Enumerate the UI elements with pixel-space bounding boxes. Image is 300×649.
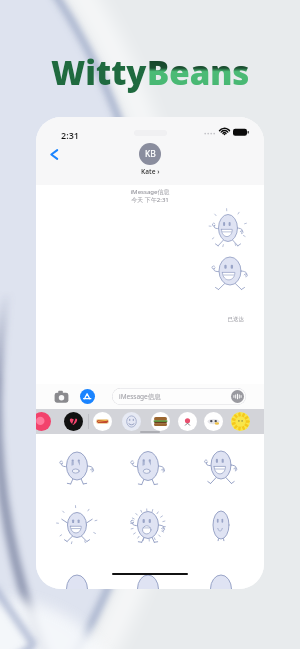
staticText: iMessage信息: [119, 392, 161, 401]
staticText: KB: [145, 148, 156, 160]
button[interactable]: Camera: [54, 389, 69, 404]
button[interactable]: Sticker pack: [122, 412, 141, 431]
button[interactable]: Sticker pack: [64, 412, 83, 431]
button[interactable]: Sticker pack: [231, 412, 250, 431]
staticText: 2:31: [61, 129, 79, 141]
button[interactable]: Sticker pack: [178, 412, 197, 431]
button[interactable]: Sticker pack: [151, 412, 170, 431]
staticText: Witty: [51, 50, 147, 95]
button[interactable]: KB: [139, 143, 161, 165]
staticText: Beans: [147, 50, 250, 95]
staticText: Kate ›: [141, 167, 160, 176]
button[interactable]: iMessage apps: [80, 389, 95, 404]
button[interactable]: Sticker pack: [93, 412, 112, 431]
staticText: iMessage信息 今天 下午2:31: [36, 188, 264, 204]
button[interactable]: Sticker pack: [204, 412, 223, 431]
button[interactable]: Record audio: [231, 390, 244, 403]
staticText: 已送达: [36, 316, 244, 323]
button[interactable]: iMessage信息: [112, 388, 246, 405]
button[interactable]: Back: [46, 146, 63, 163]
button[interactable]: Sticker pack: [36, 412, 51, 431]
